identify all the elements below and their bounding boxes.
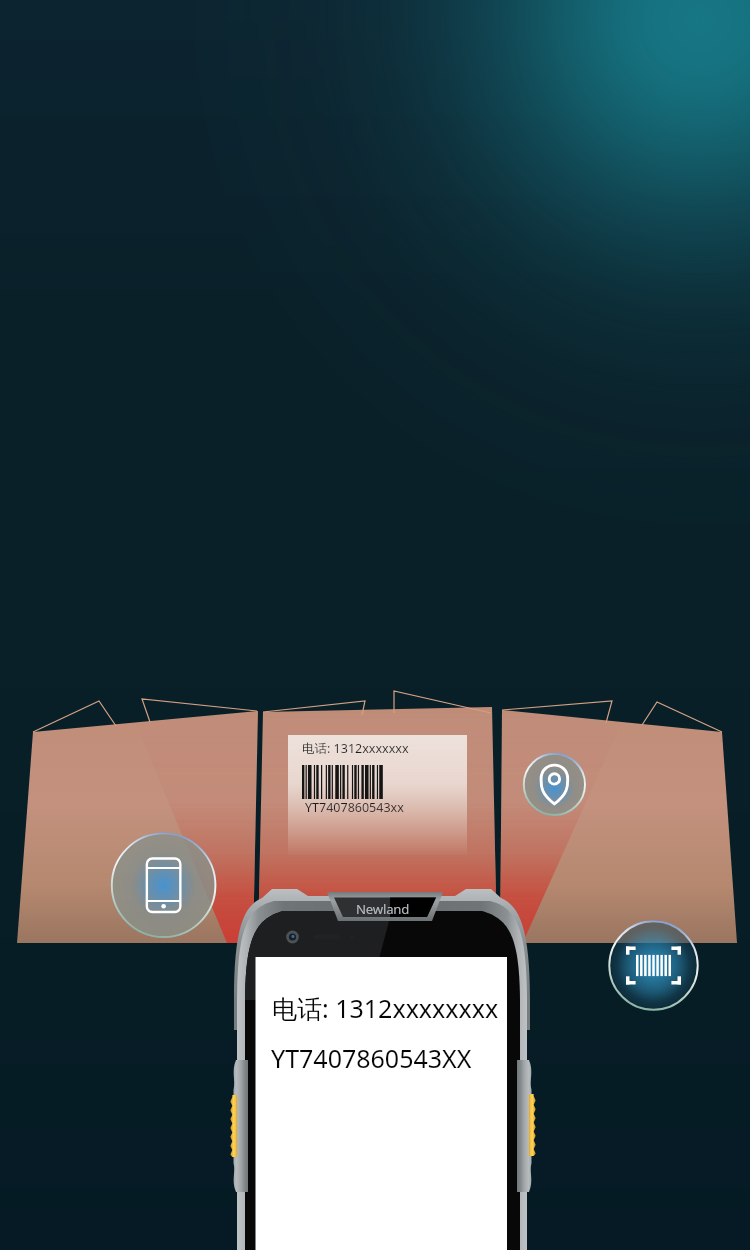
button[interactable]: Newland handheld scanner reading parcel …	[0, 0, 750, 1250]
